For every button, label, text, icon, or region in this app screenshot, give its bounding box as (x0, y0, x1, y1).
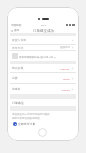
staticText: 在线支付 (60, 46, 70, 49)
staticText: 订单提交成功 (33, 29, 54, 33)
staticText: 请在提交后24小时内完成支付操作 (12, 112, 50, 115)
staticText: 立即支付订单 (18, 122, 36, 126)
staticText: 优惠券 (12, 87, 21, 91)
staticText: 9:41 (41, 23, 46, 26)
staticText: 订单备注 (12, 101, 24, 105)
button[interactable]: Home (38, 128, 47, 137)
staticText: 收货人信息 (12, 38, 26, 42)
staticText: 运费 (12, 76, 18, 80)
staticText: -¥20.00 (61, 88, 70, 91)
button[interactable]: Back (11, 29, 19, 32)
staticText: 返回 (14, 29, 19, 32)
staticText: 中国移动 (11, 23, 22, 26)
staticText: 商品金额 (12, 66, 24, 70)
staticText: 超时订单将自动取消处理 (12, 117, 40, 120)
staticText: ¥128.00 (60, 67, 70, 70)
button[interactable]: 优惠券 (10, 84, 76, 94)
button[interactable]: 经典纯棉圆领短袖T恤 白色 L码 ×1 (10, 51, 76, 61)
button[interactable]: 立即支付订单 (10, 120, 76, 127)
button[interactable]: 收货人信息 (10, 36, 76, 44)
button[interactable]: 支付方式 (10, 45, 76, 50)
staticText: 经典纯棉圆领短袖T恤 白色 L码 ×1 (19, 55, 57, 58)
button[interactable]: 运费 (10, 73, 76, 83)
button[interactable]: 商品金额 (10, 64, 76, 72)
staticText: 支付方式 (12, 46, 24, 50)
staticText: ¥0.00 (63, 77, 70, 80)
